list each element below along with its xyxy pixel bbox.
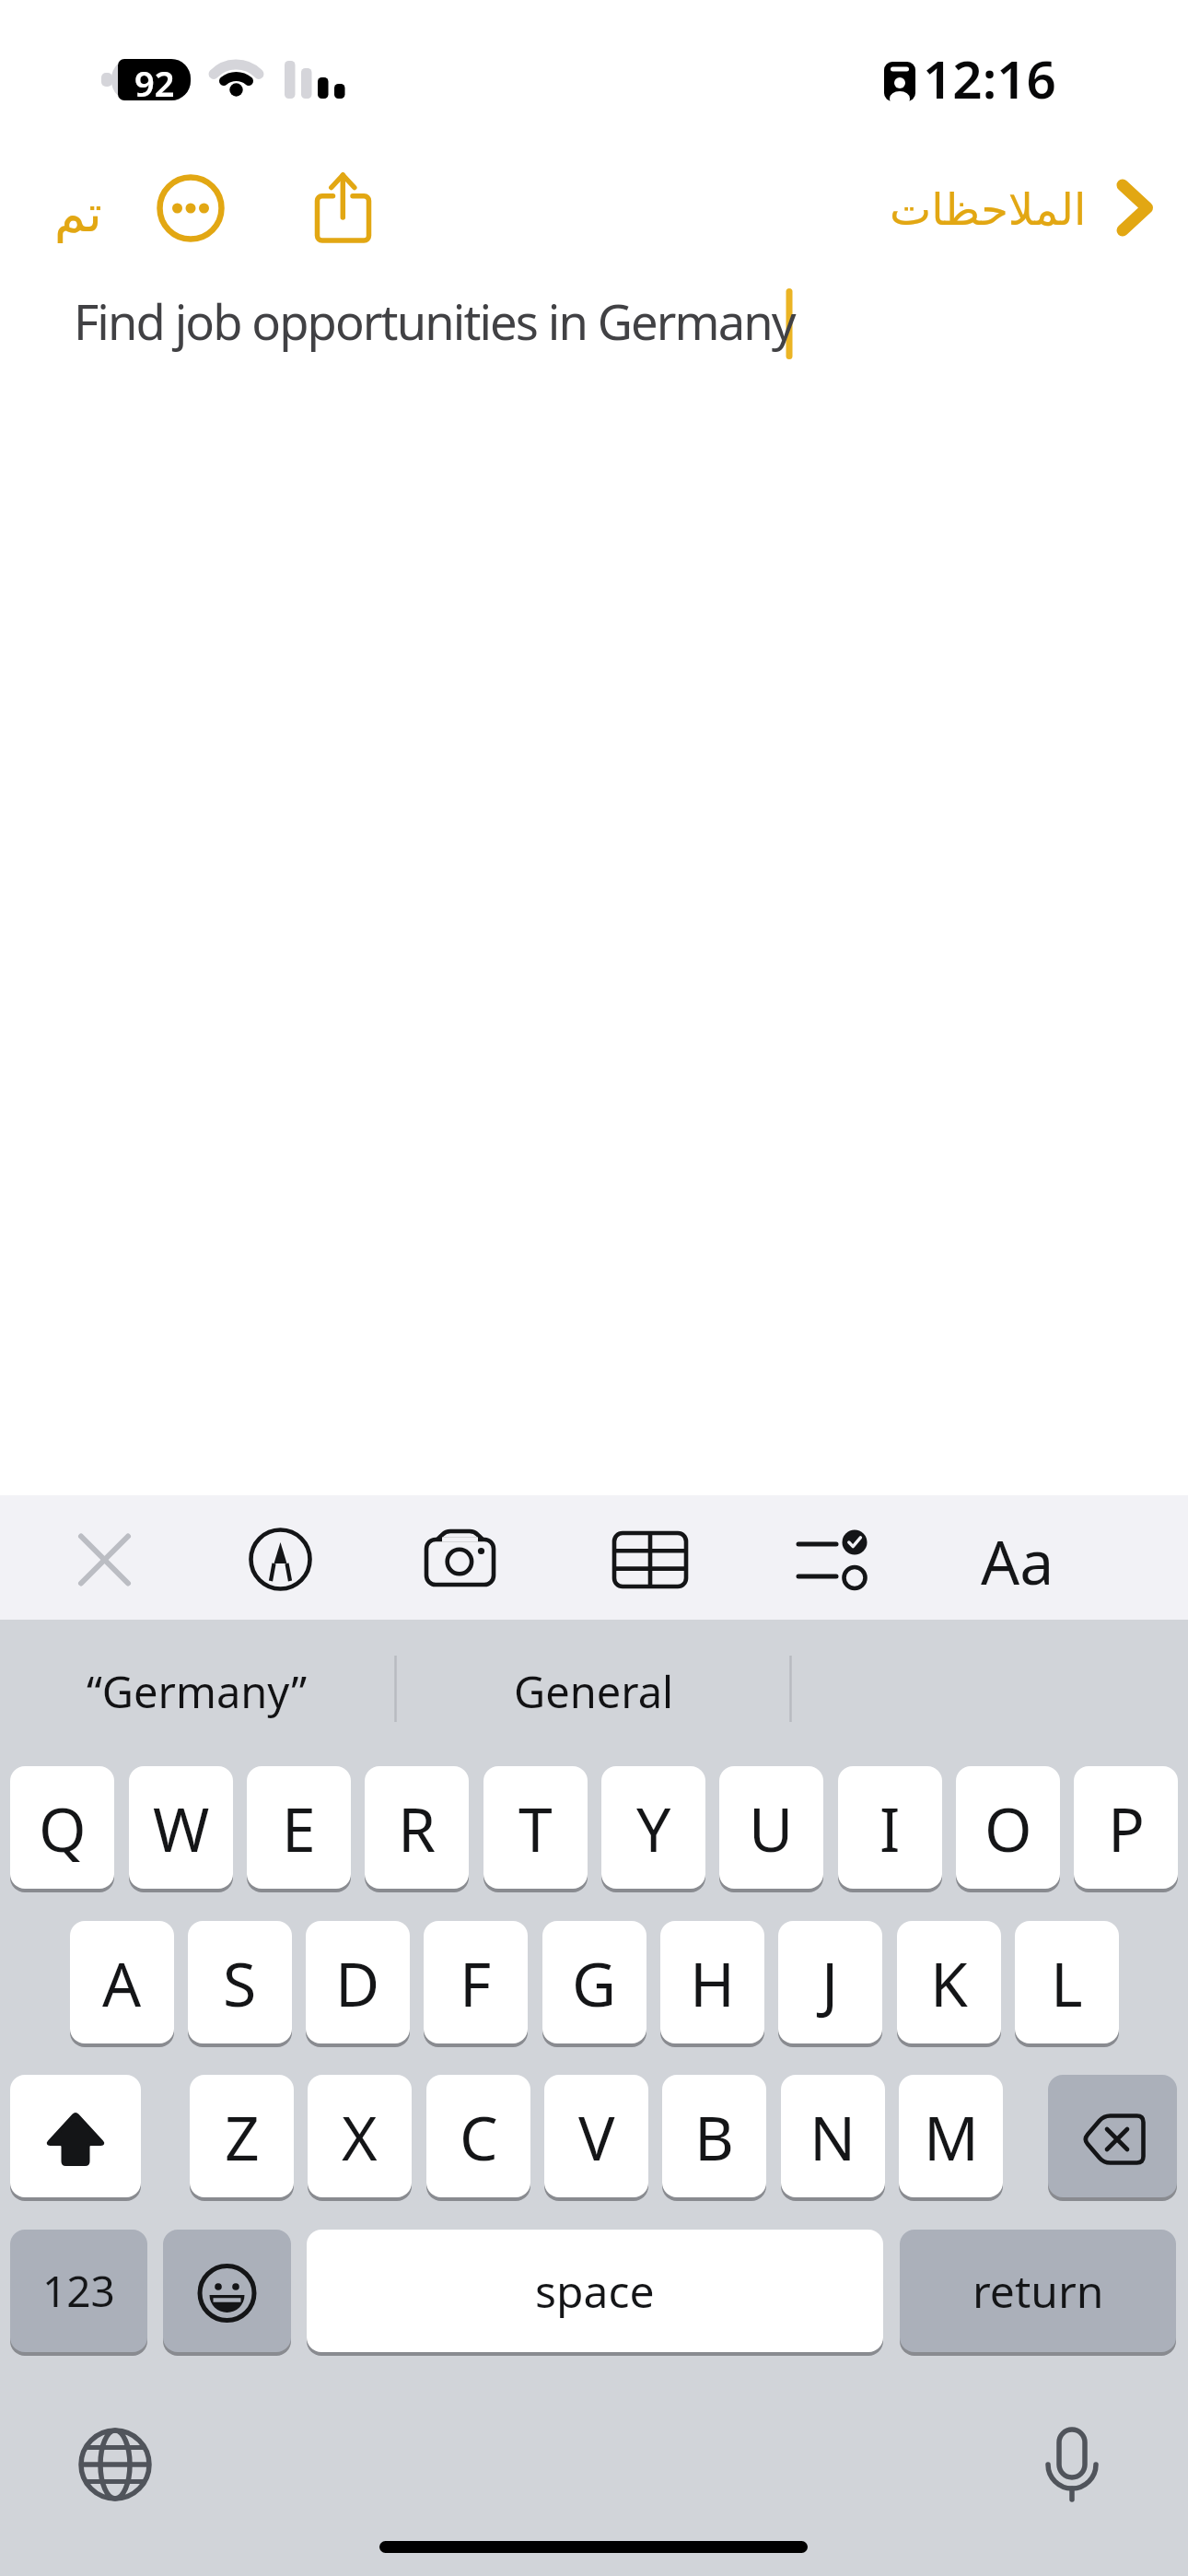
button[interactable]: Y — [601, 1766, 705, 1889]
staticText: I — [879, 1786, 901, 1869]
button[interactable]: X — [308, 2075, 412, 2197]
staticText: B — [694, 2095, 734, 2178]
staticText: Q — [39, 1786, 87, 1869]
staticText: General — [514, 1662, 674, 1721]
button[interactable] — [311, 170, 376, 247]
staticText: S — [223, 1941, 257, 2024]
button[interactable]: K — [897, 1921, 1001, 2043]
button[interactable]: General — [474, 1661, 714, 1722]
staticText: E — [282, 1786, 316, 1869]
button[interactable]: E — [247, 1766, 351, 1889]
button[interactable]: N — [781, 2075, 885, 2197]
staticText: W — [153, 1786, 210, 1869]
button[interactable]: V — [544, 2075, 648, 2197]
button[interactable] — [241, 1520, 320, 1598]
staticText: “Germany” — [87, 1662, 308, 1721]
button[interactable]: I — [838, 1766, 942, 1889]
button[interactable]: space — [307, 2230, 883, 2352]
button[interactable] — [422, 1520, 500, 1598]
button[interactable]: تم — [37, 184, 120, 241]
staticText: C — [460, 2095, 498, 2178]
button[interactable]: O — [956, 1766, 1060, 1889]
staticText: 12:16 — [923, 43, 1056, 91]
staticText: F — [460, 1941, 492, 2024]
button[interactable]: Z — [190, 2075, 294, 2197]
staticText: G — [572, 1941, 617, 2024]
button[interactable] — [792, 1520, 870, 1598]
button[interactable]: R — [365, 1766, 469, 1889]
staticText: V — [578, 2095, 615, 2178]
button[interactable] — [74, 2423, 157, 2506]
button[interactable]: return — [900, 2230, 1176, 2352]
button[interactable] — [1105, 173, 1162, 241]
button[interactable]: D — [306, 1921, 410, 2043]
button[interactable]: M — [899, 2075, 1003, 2197]
button[interactable]: 123 — [10, 2230, 147, 2352]
staticText: P — [1108, 1786, 1145, 1869]
staticText: J — [821, 1941, 839, 2024]
button[interactable]: J — [778, 1921, 882, 2043]
staticText: M — [924, 2095, 979, 2178]
staticText: Z — [225, 2095, 260, 2178]
button[interactable]: الملاحظات — [875, 181, 1101, 238]
staticText: X — [342, 2095, 378, 2178]
button[interactable]: W — [129, 1766, 233, 1889]
button[interactable] — [67, 1523, 141, 1597]
button[interactable]: S — [188, 1921, 292, 2043]
button[interactable]: L — [1015, 1921, 1119, 2043]
button[interactable]: Aa — [972, 1519, 1064, 1589]
staticText: U — [749, 1786, 794, 1869]
staticText: Aa — [981, 1519, 1054, 1589]
staticText: space — [535, 2261, 655, 2321]
button[interactable] — [611, 1520, 689, 1598]
staticText: A — [102, 1941, 142, 2024]
staticText: 92 — [134, 59, 175, 100]
staticText: H — [690, 1941, 735, 2024]
staticText: K — [930, 1941, 968, 2024]
button[interactable]: B — [662, 2075, 766, 2197]
staticText: L — [1051, 1941, 1083, 2024]
staticText: R — [398, 1786, 437, 1869]
button[interactable]: A — [70, 1921, 174, 2043]
staticText: 123 — [42, 2262, 115, 2320]
button[interactable] — [10, 2075, 141, 2197]
staticText: Find job opportunities in Germany — [74, 288, 795, 351]
button[interactable]: F — [424, 1921, 528, 2043]
staticText: return — [973, 2261, 1104, 2321]
button[interactable]: P — [1074, 1766, 1178, 1889]
staticText: O — [984, 1786, 1032, 1869]
button[interactable]: G — [542, 1921, 646, 2043]
staticText: D — [335, 1941, 380, 2024]
staticText: الملاحظات — [890, 183, 1087, 235]
button[interactable]: U — [719, 1766, 823, 1889]
staticText: تم — [54, 184, 102, 241]
button[interactable]: Q — [10, 1766, 114, 1889]
button[interactable]: “Germany” — [77, 1661, 317, 1722]
button[interactable]: C — [426, 2075, 530, 2197]
button[interactable]: T — [483, 1766, 588, 1889]
staticText: T — [518, 1786, 553, 1869]
button[interactable] — [157, 175, 225, 241]
button[interactable] — [1031, 2423, 1113, 2506]
button[interactable] — [163, 2230, 291, 2352]
button[interactable] — [1048, 2075, 1177, 2197]
button[interactable]: H — [660, 1921, 764, 2043]
staticText: Y — [636, 1786, 671, 1869]
staticText: N — [809, 2095, 856, 2178]
